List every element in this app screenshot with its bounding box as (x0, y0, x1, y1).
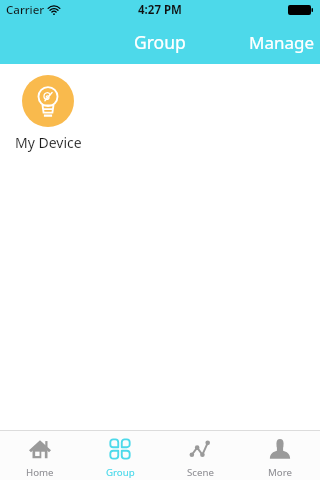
staticText: 4:27 PM (138, 2, 182, 18)
button[interactable]: Home (0, 431, 80, 480)
button[interactable]: Scene (160, 431, 240, 480)
button[interactable]: My Device (14, 75, 82, 152)
staticText: My Device (15, 133, 82, 152)
staticText: Group (134, 30, 186, 54)
staticText: Home (26, 466, 54, 479)
staticText: Manage (249, 31, 315, 54)
staticText: Scene (187, 466, 214, 479)
button[interactable]: Manage (239, 23, 320, 62)
button[interactable]: Group (80, 431, 160, 480)
button[interactable]: More (240, 431, 320, 480)
staticText: Carrier (6, 2, 45, 18)
staticText: Group (106, 466, 135, 479)
staticText: More (268, 466, 292, 479)
